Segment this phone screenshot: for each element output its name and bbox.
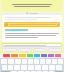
button[interactable] [2,11,62,15]
button[interactable]: Search field [4,43,60,47]
button[interactable]: Colour swatch [41,54,47,57]
button[interactable]: Colour swatch [3,54,10,57]
button[interactable]: Colour swatch [34,54,40,57]
button[interactable] [0,0,64,11]
button[interactable]: Action 1 [2,48,17,52]
button[interactable]: Colour swatch [19,54,26,57]
button[interactable]: Colour swatch [27,54,33,57]
button[interactable]: Highlighted suggestion [5,22,59,27]
button[interactable]: Action 3 [33,48,47,52]
button[interactable]: Colour swatch [11,54,18,57]
button[interactable]: Colour swatch [55,54,61,57]
button[interactable]: Action 2 [18,48,32,52]
button[interactable]: Action 4 [48,48,62,52]
button[interactable]: Colour swatch [48,54,54,57]
